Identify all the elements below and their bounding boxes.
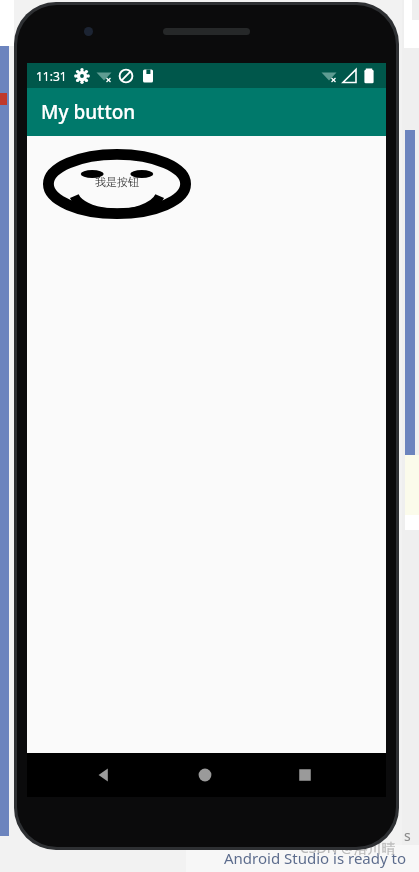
button[interactable]: Recent apps <box>289 759 321 791</box>
staticText: My button <box>41 99 136 125</box>
button[interactable]: Home <box>189 759 221 791</box>
staticText: CSDN @洛川晴 <box>300 838 396 857</box>
staticText: s <box>404 826 411 845</box>
staticText: 我是按钮 <box>95 175 139 189</box>
button[interactable]: Back <box>88 759 120 791</box>
staticText: 11:31 <box>36 68 67 84</box>
staticText: Android Studio is ready to <box>224 848 407 868</box>
button[interactable]: 我是按钮 <box>43 149 191 219</box>
